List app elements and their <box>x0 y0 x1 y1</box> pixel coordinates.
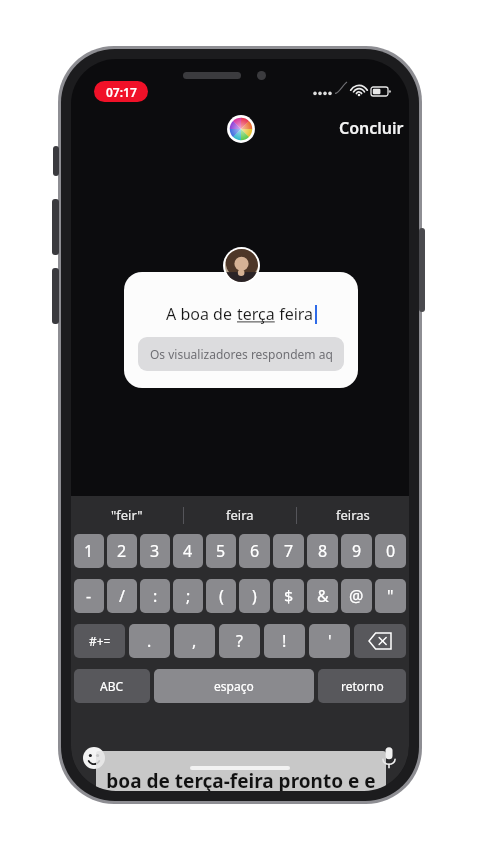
button[interactable]: boa de terça-feira pronto e e <box>96 751 386 791</box>
staticText: & <box>317 585 329 607</box>
staticText: ABC <box>100 678 124 694</box>
button[interactable]: / <box>107 579 137 613</box>
staticText: 4 <box>183 540 193 562</box>
button[interactable]: ? <box>219 624 260 658</box>
staticText: A boa de <box>166 303 237 325</box>
button[interactable]: A boa de <box>124 272 358 388</box>
button[interactable]: : <box>140 579 170 613</box>
button[interactable]: Foto do perfil <box>223 247 260 284</box>
button[interactable]: Concluir <box>339 117 404 139</box>
button[interactable]: feira <box>184 496 296 534</box>
button[interactable]: " <box>375 579 406 613</box>
button[interactable]: @ <box>341 579 372 613</box>
staticText: : <box>153 585 158 607</box>
staticText: 3 <box>150 540 160 562</box>
button[interactable]: retorno <box>318 669 406 703</box>
button[interactable]: 4 <box>173 534 203 568</box>
staticText: , <box>192 630 197 652</box>
button[interactable]: Ditado <box>381 746 397 770</box>
staticText: "feir" <box>111 506 143 524</box>
button[interactable]: ( <box>206 579 236 613</box>
button[interactable]: 2 <box>107 534 137 568</box>
button[interactable]: Cor do texto <box>224 112 258 146</box>
staticText: retorno <box>341 678 384 694</box>
staticText: feira <box>275 303 314 325</box>
staticText: " <box>387 585 394 607</box>
staticText: 8 <box>318 540 328 562</box>
button[interactable]: ; <box>173 579 203 613</box>
staticText: 5 <box>216 540 226 562</box>
staticText: ) <box>252 585 257 607</box>
staticText: . <box>147 630 152 652</box>
staticText: feira <box>226 506 254 524</box>
staticText: ; <box>186 585 191 607</box>
button[interactable]: "feir" <box>71 496 183 534</box>
staticText: espaço <box>214 678 254 694</box>
button[interactable]: , <box>174 624 215 658</box>
button[interactable]: ! <box>264 624 305 658</box>
button[interactable]: 8 <box>307 534 338 568</box>
staticText: 7 <box>284 540 294 562</box>
staticText: #+= <box>89 633 111 649</box>
staticText: feiras <box>336 506 370 524</box>
staticText: $ <box>284 585 294 607</box>
staticText: ' <box>328 630 332 652</box>
button[interactable]: #+= <box>74 624 125 658</box>
staticText: 6 <box>250 540 260 562</box>
button[interactable]: 1 <box>74 534 104 568</box>
staticText: / <box>119 585 125 607</box>
button[interactable]: 3 <box>140 534 170 568</box>
button[interactable]: ) <box>239 579 270 613</box>
staticText: - <box>86 585 92 607</box>
staticText: terça <box>237 303 275 325</box>
button[interactable]: $ <box>273 579 304 613</box>
button[interactable]: 7 <box>273 534 304 568</box>
button[interactable]: Emoji <box>83 747 105 769</box>
button[interactable]: . <box>129 624 170 658</box>
staticText: ? <box>236 630 243 652</box>
staticText: 0 <box>386 540 396 562</box>
button[interactable]: Apagar <box>354 624 406 658</box>
staticText: 07:17 <box>106 84 137 100</box>
button[interactable]: espaço <box>154 669 314 703</box>
staticText: 9 <box>352 540 362 562</box>
button[interactable]: 9 <box>341 534 372 568</box>
button[interactable]: ABC <box>74 669 150 703</box>
button[interactable]: feiras <box>297 496 409 534</box>
staticText: Concluir <box>339 117 404 139</box>
staticText: 2 <box>117 540 127 562</box>
staticText: ! <box>282 630 287 652</box>
staticText: @ <box>349 585 364 607</box>
button[interactable]: ' <box>309 624 350 658</box>
button[interactable]: 5 <box>206 534 236 568</box>
staticText: boa de terça-feira pronto e e <box>106 768 376 791</box>
button[interactable]: 0 <box>375 534 406 568</box>
button[interactable]: & <box>307 579 338 613</box>
staticText: Os visualizadores respondem aq <box>150 346 333 362</box>
button[interactable]: - <box>74 579 104 613</box>
staticText: ( <box>219 585 224 607</box>
button[interactable]: 6 <box>239 534 270 568</box>
staticText: 1 <box>84 540 94 562</box>
